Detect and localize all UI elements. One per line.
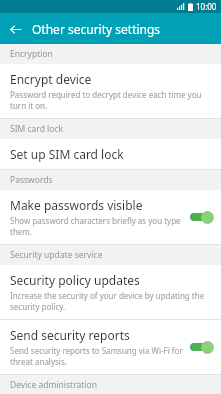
- staticText: Send security reports to Samsung via Wi-…: [10, 345, 183, 367]
- staticText: Password required to decrypt device each…: [10, 89, 215, 111]
- staticText: Security policy updates: [10, 272, 140, 288]
- staticText: Other security settings: [32, 21, 161, 37]
- staticText: Make passwords visible: [10, 197, 143, 213]
- staticText: Security update service: [10, 249, 103, 261]
- staticText: Send security reports: [10, 327, 130, 343]
- button[interactable]: Make passwords visible: [0, 190, 221, 244]
- staticText: Device administration: [10, 379, 97, 391]
- button[interactable]: Toggle: [189, 209, 215, 225]
- staticText: 10:00: [196, 1, 217, 12]
- button[interactable]: Encrypt device: [0, 64, 221, 118]
- button[interactable]: Back: [0, 14, 30, 44]
- staticText: Set up SIM card lock: [10, 146, 124, 162]
- staticText: Encryption: [10, 48, 53, 60]
- button[interactable]: Send security reports: [0, 320, 221, 374]
- button[interactable]: Toggle: [189, 339, 215, 355]
- staticText: Passwords: [10, 174, 53, 186]
- button[interactable]: Security policy updates: [0, 265, 221, 319]
- staticText: SIM card lock: [10, 123, 64, 135]
- staticText: Increase the security of your device by …: [10, 290, 215, 312]
- button[interactable]: Set up SIM card lock: [0, 139, 221, 169]
- staticText: Encrypt device: [10, 71, 92, 87]
- staticText: Show password characters briefly as you …: [10, 215, 183, 237]
